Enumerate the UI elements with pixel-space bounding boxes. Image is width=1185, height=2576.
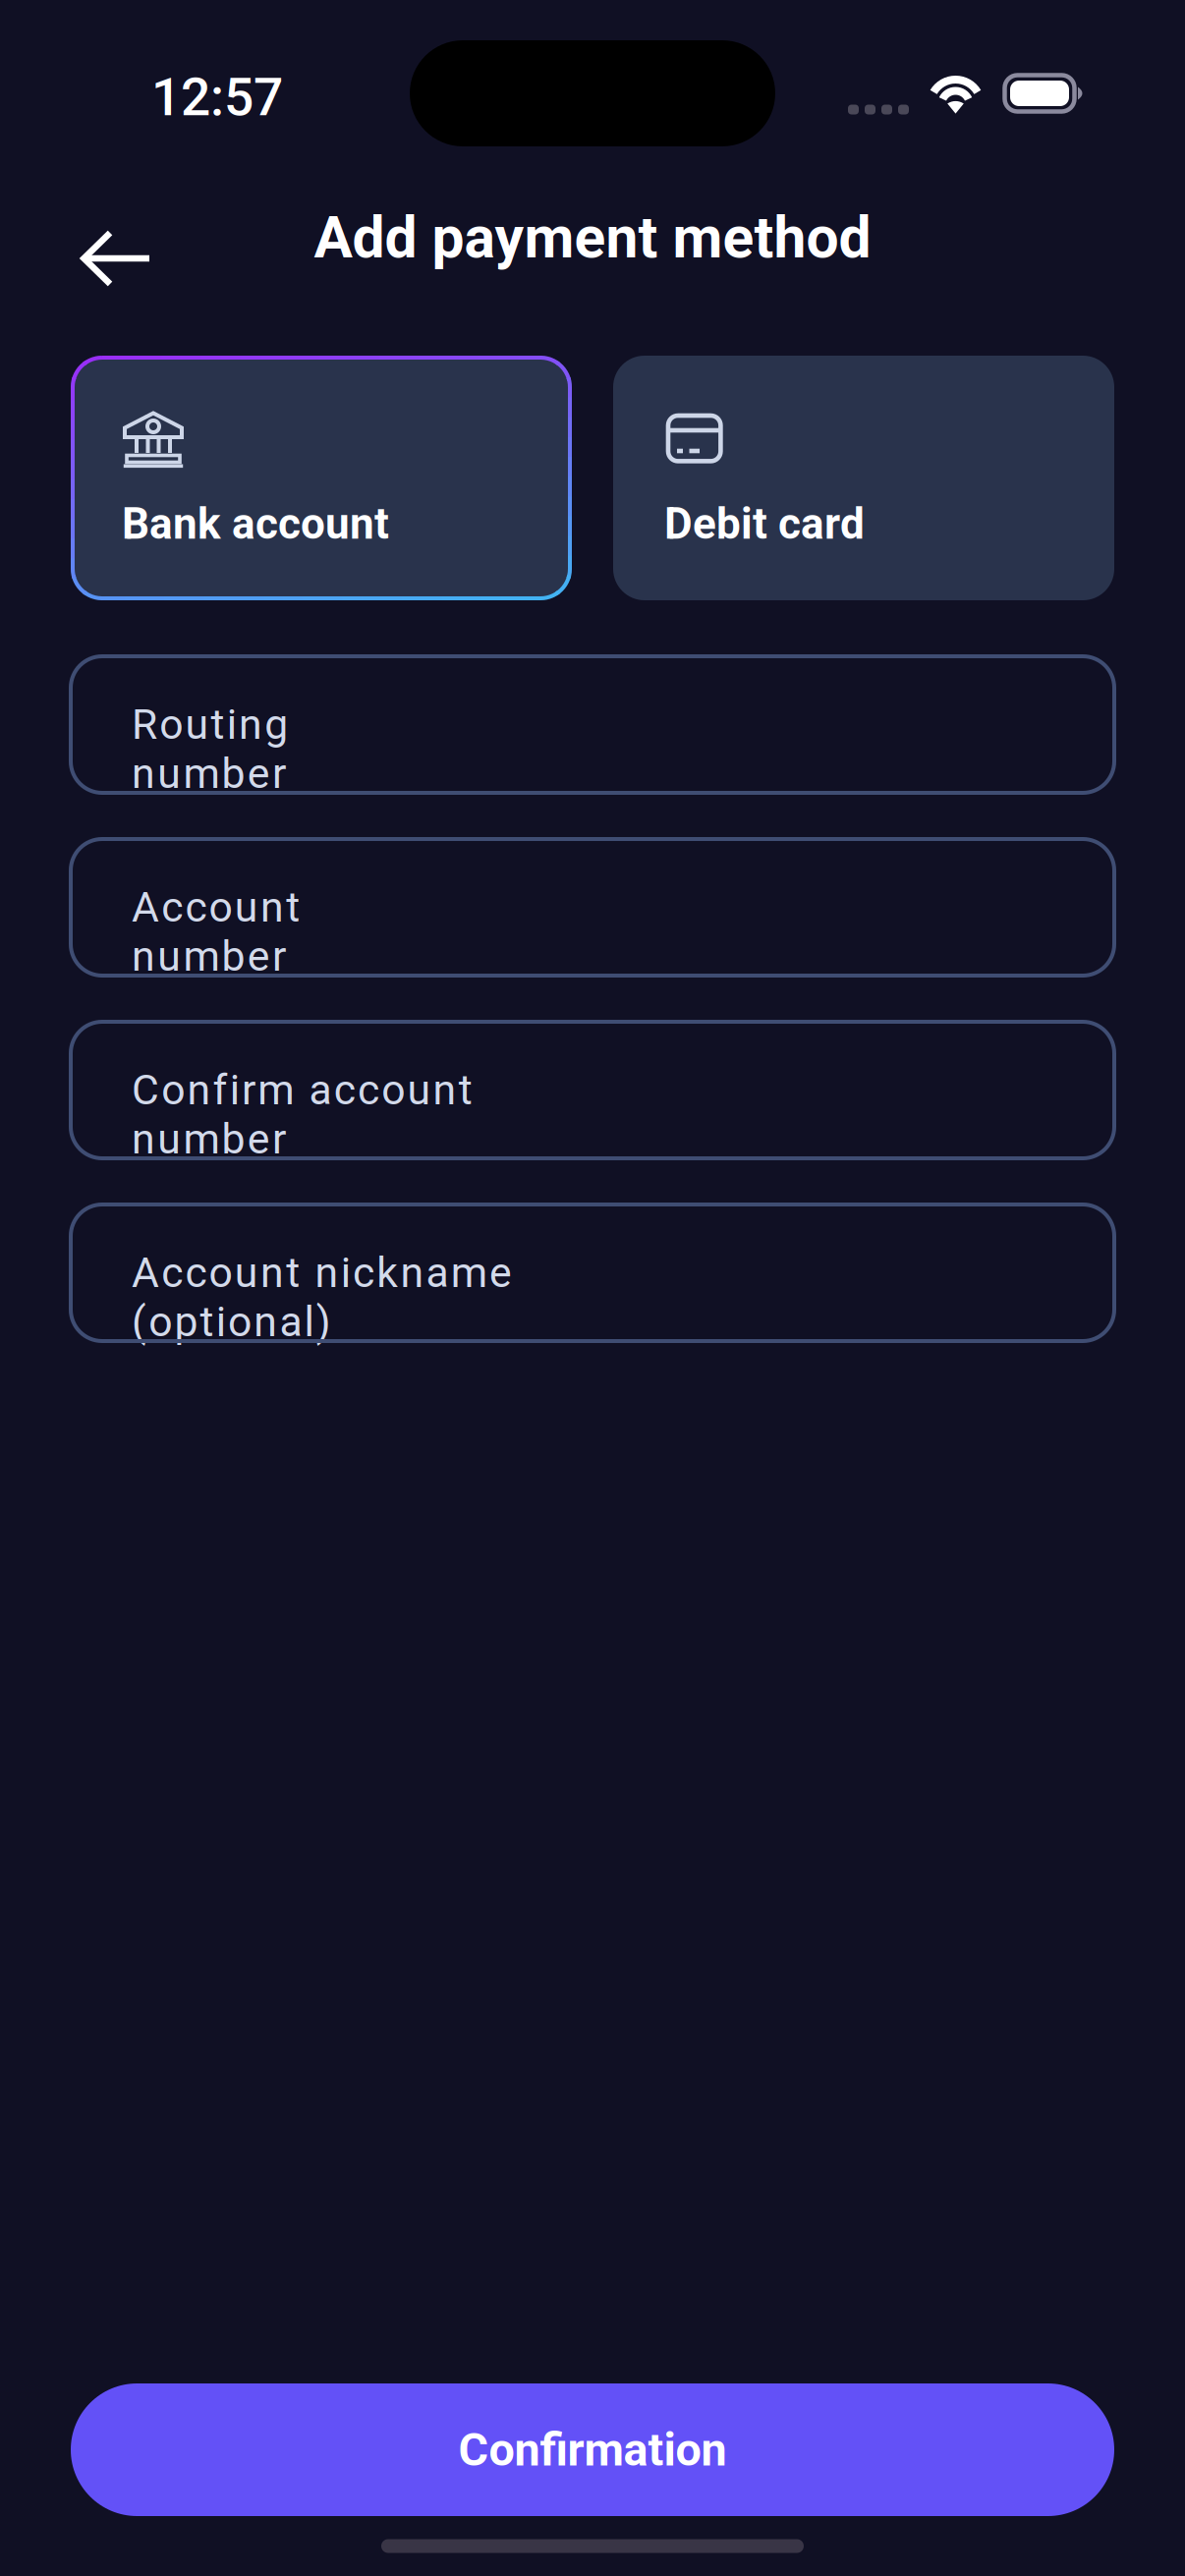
button[interactable]: Debit card — [613, 356, 1114, 600]
staticText: Debit card — [664, 498, 865, 549]
staticText: 12:57 — [151, 67, 283, 128]
staticText: Bank account — [122, 498, 389, 549]
staticText: Routing number — [132, 700, 457, 749]
staticText: Confirmation — [458, 2423, 727, 2477]
staticText: Account nickname (optional) — [132, 1248, 726, 1297]
button[interactable]: Back — [0, 192, 172, 292]
button[interactable]: Bank account — [71, 356, 572, 600]
button[interactable]: Confirmation — [71, 2383, 1114, 2516]
staticText: Account number — [132, 883, 469, 932]
button[interactable]: Routing number — [71, 656, 1114, 793]
staticText: Confirm account number — [132, 1065, 642, 1115]
staticText: Add payment method — [314, 204, 871, 272]
button[interactable]: Account number — [71, 839, 1114, 976]
button[interactable]: Account nickname (optional) — [71, 1204, 1114, 1341]
button[interactable]: Confirm account number — [71, 1022, 1114, 1158]
